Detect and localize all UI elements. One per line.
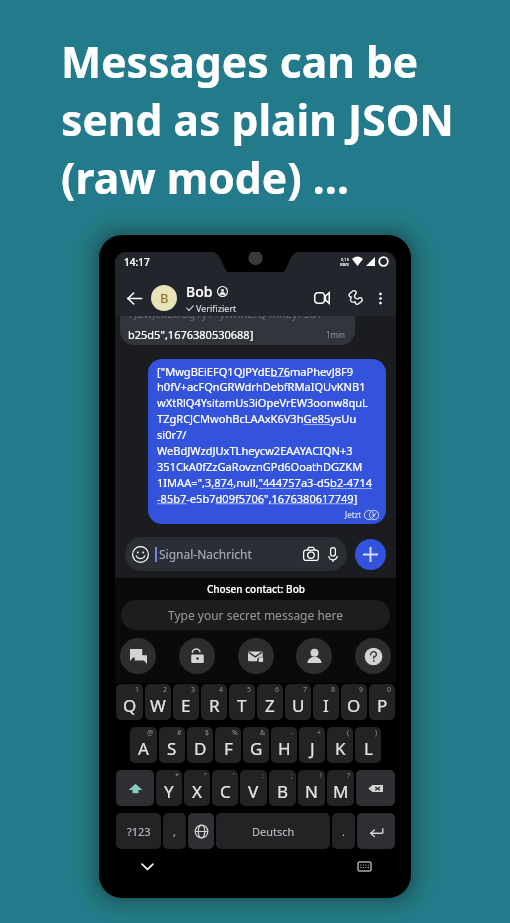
button[interactable]: % <box>215 727 241 763</box>
button[interactable]: Hide keyboard <box>137 856 157 876</box>
button[interactable]: ) <box>355 727 381 763</box>
button[interactable]: ' <box>212 770 238 806</box>
button[interactable]: ( <box>327 727 353 763</box>
staticText: 9 <box>359 685 364 695</box>
staticText: 5 <box>247 685 252 695</box>
staticText: F <box>224 737 233 760</box>
staticText: ) <box>375 728 378 738</box>
staticText: 0 <box>387 685 392 695</box>
button[interactable]: New message <box>355 539 386 570</box>
staticText: ; <box>291 771 293 781</box>
button[interactable]: Backspace <box>356 770 395 806</box>
staticText: b25d5",1676380530688] <box>128 327 254 342</box>
button[interactable]: 1 <box>116 684 143 720</box>
button[interactable]: * <box>156 770 182 806</box>
button[interactable]: B <box>151 285 177 311</box>
button[interactable]: Call <box>342 285 368 311</box>
button[interactable]: Back <box>121 285 147 311</box>
staticText: # <box>177 728 182 738</box>
button[interactable]: Signal-Nachricht <box>125 537 347 571</box>
button[interactable]: 7J2wJcuZbGg1yT+ywhRLrQ4nX2yFSd1 <box>120 311 355 345</box>
staticText: N <box>305 780 318 803</box>
staticText: G <box>250 737 263 760</box>
button[interactable]: ? <box>327 770 354 806</box>
staticText: T <box>237 694 247 717</box>
staticText: & <box>260 728 266 738</box>
staticText: Signal-Nachricht <box>159 546 252 562</box>
staticText: : <box>262 771 264 781</box>
staticText: R <box>209 694 220 717</box>
staticText: J <box>310 737 315 760</box>
button[interactable]: Help <box>355 638 391 674</box>
staticText: , <box>173 824 176 839</box>
button[interactable]: Type your secret message here <box>121 600 390 630</box>
staticText: 1min <box>326 329 346 340</box>
button[interactable]: - <box>271 727 297 763</box>
button[interactable]: 4 <box>201 684 227 720</box>
staticText: W <box>150 694 166 717</box>
staticText: Bob <box>186 282 213 301</box>
button[interactable]: . <box>332 813 355 849</box>
button[interactable]: & <box>243 727 269 763</box>
staticText: Messages can be send as plain JSON (raw … <box>61 32 454 206</box>
staticText: O <box>347 694 361 717</box>
button[interactable]: @ <box>130 727 157 763</box>
button[interactable]: ; <box>269 770 296 806</box>
staticText: Q <box>123 694 137 717</box>
staticText: Y <box>164 780 174 803</box>
staticText: KB/S <box>340 262 349 267</box>
button[interactable]: Encrypt <box>179 638 215 674</box>
staticText: 6 <box>275 685 280 695</box>
staticText: Type your secret message here <box>168 607 344 623</box>
button[interactable]: , <box>163 813 186 849</box>
button[interactable]: 7 <box>285 684 311 720</box>
staticText: Chosen contact: Bob <box>207 582 305 596</box>
staticText: 8 <box>331 685 336 695</box>
button[interactable]: $ <box>187 727 213 763</box>
button[interactable]: ["MwgBEiEFQ1QJPYdEb76maPhevJ8F9 h0fV+acF… <box>148 359 386 524</box>
button[interactable]: + <box>299 727 325 763</box>
button[interactable]: Change language <box>188 813 214 849</box>
button[interactable]: Enter <box>357 813 395 849</box>
button[interactable]: 3 <box>173 684 199 720</box>
button[interactable]: Video call <box>309 285 335 311</box>
staticText: 4 <box>219 685 224 695</box>
button[interactable]: Secure mail <box>238 638 274 674</box>
staticText: $ <box>205 728 210 738</box>
staticText: B <box>160 289 169 307</box>
button[interactable]: Shift <box>116 770 154 806</box>
staticText: L <box>364 737 373 760</box>
staticText: Verifiziert <box>196 302 237 314</box>
button[interactable]: Deutsch <box>216 813 330 849</box>
staticText: + <box>317 728 322 738</box>
staticText: ? <box>347 771 351 781</box>
button[interactable]: 5 <box>229 684 255 720</box>
button[interactable]: Conversation <box>120 638 156 674</box>
button[interactable]: # <box>159 727 185 763</box>
staticText: 1 <box>135 685 140 695</box>
staticText: C <box>220 780 231 803</box>
staticText: Jetzt <box>345 509 362 520</box>
button[interactable]: Switch keyboard <box>354 856 374 876</box>
button[interactable]: ! <box>298 770 325 806</box>
staticText: K <box>335 737 346 760</box>
button[interactable]: More options <box>370 288 390 308</box>
button[interactable]: " <box>184 770 210 806</box>
staticText: A <box>138 737 149 760</box>
button[interactable]: ?123 <box>116 813 161 849</box>
staticText: @ <box>147 728 154 738</box>
button[interactable]: 2 <box>145 684 171 720</box>
staticText: 14:17 <box>124 255 150 269</box>
staticText: ?123 <box>127 824 151 839</box>
button[interactable]: 9 <box>341 684 367 720</box>
staticText: . <box>342 824 345 839</box>
button[interactable]: Contacts <box>296 638 332 674</box>
button[interactable]: 8 <box>313 684 339 720</box>
button[interactable]: 0 <box>369 684 395 720</box>
staticText: Deutsch <box>252 824 295 839</box>
staticText: 7J2wJcuZbGg1yT+ywhRLrQ4nX2yFSd1 <box>128 311 323 321</box>
staticText: V <box>248 780 259 803</box>
button[interactable]: 6 <box>257 684 283 720</box>
button[interactable]: : <box>240 770 267 806</box>
staticText: ' <box>233 771 235 781</box>
